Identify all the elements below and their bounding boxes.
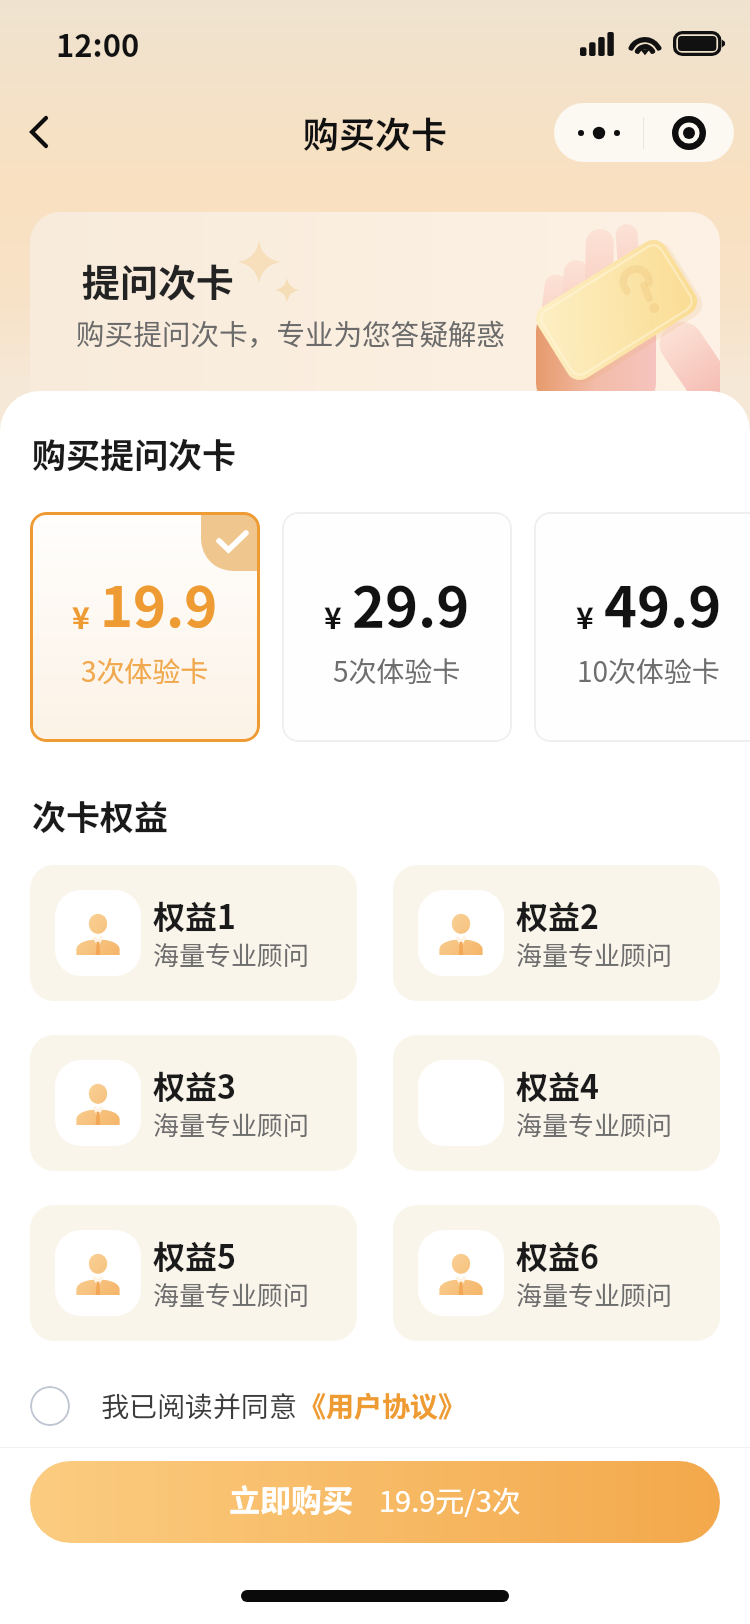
staticText: 19.9元/3次: [379, 1478, 521, 1520]
button[interactable]: 权益6: [393, 1205, 720, 1341]
button[interactable]: 立即购买: [30, 1461, 720, 1543]
staticText: 权益1: [153, 892, 236, 938]
staticText: ¥: [324, 594, 342, 637]
staticText: 权益2: [516, 892, 599, 938]
staticText: 次卡权益: [32, 791, 168, 840]
staticText: 海量专业顾问: [516, 1105, 673, 1143]
staticText: 购买提问次卡: [32, 429, 236, 478]
staticText: 海量专业顾问: [516, 935, 673, 973]
staticText: 我已阅读并同意: [101, 1385, 298, 1426]
button[interactable]: 权益3: [30, 1035, 357, 1171]
staticText: 19.9: [100, 562, 218, 643]
staticText: 权益6: [516, 1232, 599, 1278]
button[interactable]: Back: [0, 88, 83, 176]
staticText: 立即购买: [229, 1476, 353, 1521]
staticText: 购买提问次卡，专业为您答疑解惑: [76, 312, 505, 353]
staticText: 提问次卡: [82, 253, 235, 308]
button[interactable]: ¥: [534, 512, 750, 742]
button[interactable]: ¥: [282, 512, 512, 742]
staticText: 权益4: [516, 1062, 599, 1108]
staticText: 购买次卡: [303, 106, 448, 158]
button[interactable]: ¥: [30, 512, 260, 742]
button[interactable]: 权益2: [393, 865, 720, 1001]
button[interactable]: Mini program menu: [644, 116, 734, 150]
button[interactable]: More options: [554, 120, 643, 146]
staticText: 5次体验卡: [333, 650, 461, 691]
button[interactable]: 《用户协议》: [298, 1385, 467, 1426]
staticText: 12:00: [56, 21, 140, 66]
staticText: 3次体验卡: [81, 650, 209, 691]
staticText: 海量专业顾问: [153, 1275, 310, 1313]
button[interactable]: 权益4: [393, 1035, 720, 1171]
staticText: ¥: [576, 594, 594, 637]
staticText: 海量专业顾问: [153, 1105, 310, 1143]
staticText: ¥: [72, 594, 90, 637]
staticText: 权益5: [153, 1232, 236, 1278]
staticText: 海量专业顾问: [516, 1275, 673, 1313]
staticText: 10次体验卡: [577, 650, 721, 691]
button[interactable]: Agree to user agreement: [30, 1386, 70, 1426]
staticText: 29.9: [352, 562, 470, 643]
staticText: 海量专业顾问: [153, 935, 310, 973]
staticText: 49.9: [604, 562, 722, 643]
button[interactable]: 权益5: [30, 1205, 357, 1341]
button[interactable]: 权益1: [30, 865, 357, 1001]
staticText: 权益3: [153, 1062, 236, 1108]
